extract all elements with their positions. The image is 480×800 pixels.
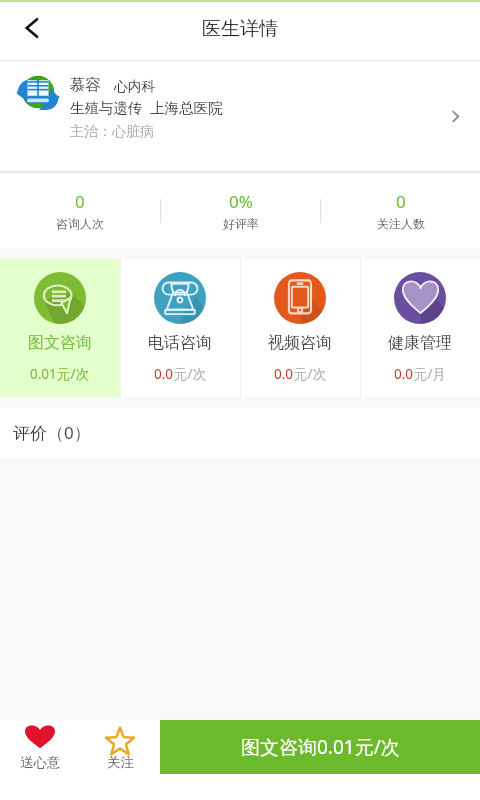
staticText: 图文咨询 (28, 333, 92, 353)
button[interactable]: 图文咨询 (0, 259, 120, 397)
staticText: 关注 (107, 754, 134, 771)
button[interactable]: 关注 (80, 720, 160, 800)
staticText: 0.0 (274, 365, 294, 383)
staticText: 0 (75, 190, 85, 213)
button[interactable]: 送心意 (0, 720, 80, 800)
staticText: 元/次 (294, 365, 327, 383)
staticText: 电话咨询 (148, 333, 212, 353)
button[interactable]: 健康管理 (360, 259, 480, 397)
staticText: 0 (396, 190, 406, 213)
staticText: 慕容 (70, 75, 101, 95)
staticText: 生殖与遗传 上海总医院 (70, 97, 223, 117)
staticText: 健康管理 (388, 333, 452, 353)
staticText: 关注人数 (377, 216, 425, 231)
button[interactable]: 0 (0, 173, 160, 248)
staticText: 心内科 (114, 78, 156, 95)
button[interactable]: 慕容 (0, 61, 480, 171)
staticText: 0.0 (154, 365, 174, 383)
staticText: 元/次 (57, 365, 90, 383)
staticText: 好评率 (223, 216, 259, 231)
staticText: 医生详情 (202, 17, 278, 41)
staticText: 视频咨询 (268, 333, 332, 353)
button[interactable]: 0% (161, 173, 320, 248)
staticText: 元/次 (174, 365, 207, 383)
staticText: 0.0 (394, 365, 414, 383)
staticText: 送心意 (20, 754, 61, 771)
button[interactable]: 电话咨询 (120, 259, 240, 397)
staticText: 元/月 (414, 365, 447, 383)
staticText: 咨询人次 (56, 216, 104, 231)
staticText: 图文咨询0.01元/次 (241, 734, 400, 760)
staticText: 评价（0） (13, 421, 91, 444)
staticText: 0.01 (30, 365, 57, 383)
button[interactable]: 图文咨询0.01元/次 (160, 720, 480, 774)
button[interactable]: 0 (321, 173, 480, 248)
button[interactable]: Back (0, 2, 60, 60)
staticText: 0% (229, 190, 253, 213)
button[interactable]: 视频咨询 (240, 259, 360, 397)
staticText: 主治：心脏病 (70, 123, 154, 141)
